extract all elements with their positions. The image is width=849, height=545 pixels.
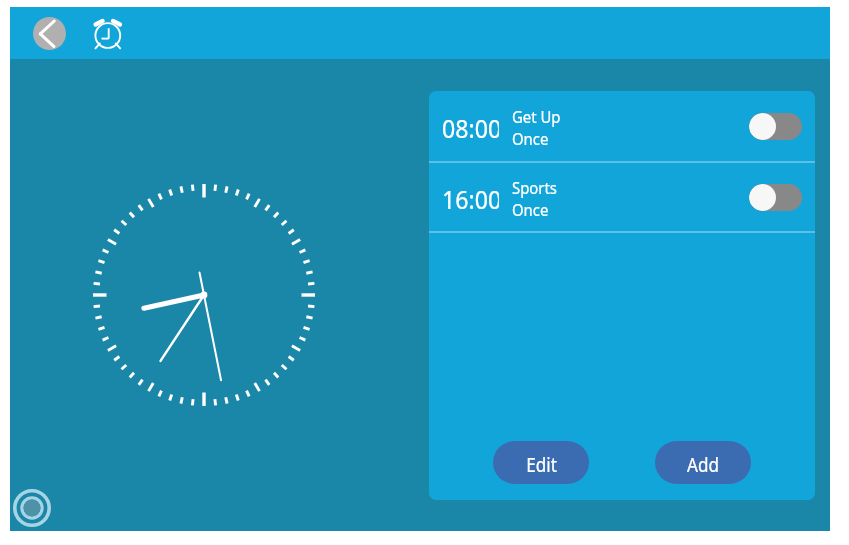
button[interactable]: Toggle alarm: [749, 184, 802, 211]
staticText: Once: [512, 128, 549, 150]
staticText: Edit: [526, 452, 557, 479]
staticText: Once: [512, 199, 549, 221]
staticText: Add: [687, 452, 719, 479]
button[interactable]: Add: [655, 441, 751, 484]
button[interactable]: 08:00: [429, 91, 815, 161]
button[interactable]: Back: [33, 17, 66, 50]
button[interactable]: Alarm: [88, 14, 126, 52]
staticText: 16:00: [442, 182, 499, 215]
button[interactable]: Edit: [493, 441, 589, 484]
button[interactable]: Home: [12, 488, 52, 528]
staticText: Sports: [512, 177, 558, 199]
staticText: Get Up: [512, 106, 561, 128]
staticText: 08:00: [442, 111, 499, 144]
button[interactable]: Toggle alarm: [749, 113, 802, 140]
button[interactable]: 16:00: [429, 163, 815, 231]
